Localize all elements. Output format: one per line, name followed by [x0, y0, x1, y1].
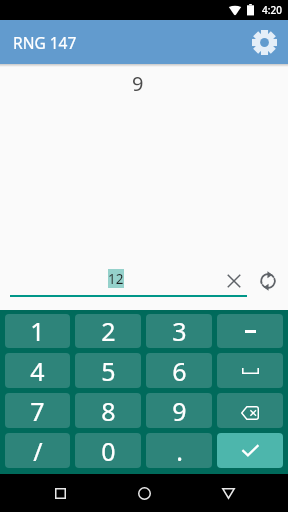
button[interactable]: 0 [75, 433, 141, 468]
button[interactable]: 2 [75, 314, 141, 348]
button[interactable]: 1 [5, 314, 70, 348]
staticText: 4:20 [262, 3, 282, 17]
staticText: 2 [101, 314, 116, 348]
staticText: 3 [172, 314, 187, 348]
staticText: 7 [30, 394, 45, 428]
staticText: 9 [172, 394, 187, 428]
button[interactable]: 4 [5, 353, 70, 388]
button[interactable]: 6 [146, 353, 212, 388]
staticText: 8 [101, 394, 116, 428]
staticText: 6 [172, 354, 187, 388]
button[interactable]: Clear [217, 264, 251, 298]
button[interactable]: Minus [217, 314, 283, 348]
button[interactable]: Settings [248, 26, 280, 58]
button[interactable]: Recents [204, 474, 252, 512]
button[interactable]: . [146, 433, 212, 468]
button[interactable]: Enter [217, 433, 283, 468]
button[interactable]: 3 [146, 314, 212, 348]
staticText: 0 [101, 434, 116, 468]
staticText: 4 [30, 354, 45, 388]
button[interactable]: Back [36, 474, 84, 512]
button[interactable]: 8 [75, 393, 141, 428]
staticText: 1 [30, 314, 45, 348]
button[interactable]: / [5, 433, 70, 468]
staticText: / [33, 434, 43, 468]
button[interactable]: Home [120, 474, 168, 512]
button[interactable]: 7 [5, 393, 70, 428]
button[interactable]: Space [217, 353, 283, 388]
button[interactable]: Backspace [217, 393, 283, 428]
staticText: RNG 147 [13, 32, 77, 53]
button[interactable]: 5 [75, 353, 141, 388]
staticText: 12 [108, 270, 124, 288]
staticText: . [176, 434, 183, 468]
staticText: 9 [132, 70, 144, 97]
button[interactable]: 9 [146, 393, 212, 428]
button[interactable]: Refresh [251, 264, 285, 298]
staticText: 5 [101, 354, 116, 388]
